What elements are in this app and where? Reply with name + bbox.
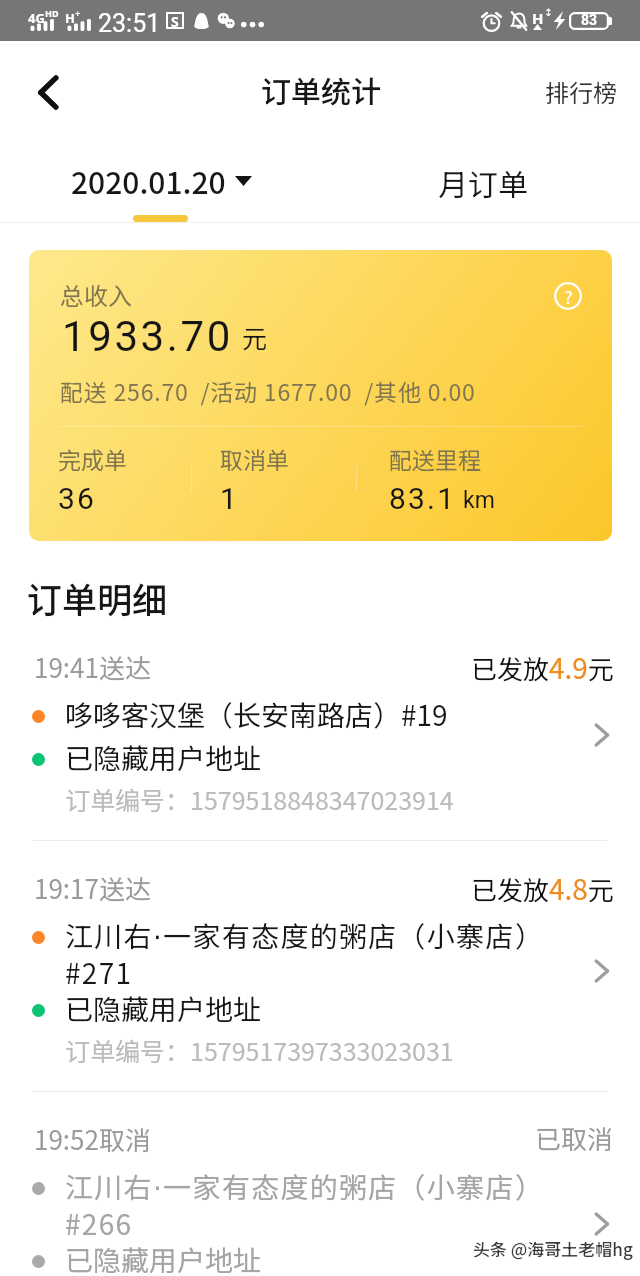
staticText: 取消单 [220, 442, 289, 475]
staticText: km [463, 487, 495, 514]
button[interactable]: 月订单 [320, 130, 640, 223]
staticText: 19:41送达 [34, 648, 151, 686]
staticText: S [171, 12, 179, 29]
staticText: 总收入 [60, 277, 132, 312]
button[interactable]: 2020.01.20 [0, 130, 320, 223]
staticText: 36 [58, 481, 97, 516]
staticText: 完成单 [58, 442, 127, 475]
staticText: 订单编号：1579518848347023914 [65, 781, 454, 817]
button[interactable]: 19:17送达 [0, 849, 640, 1091]
staticText: ↕ [544, 7, 548, 19]
staticText: 订单明细 [27, 572, 168, 623]
staticText: 83 [581, 12, 598, 28]
staticText: 配送 256.70 /活动 1677.00 /其他 0.00 [60, 374, 476, 407]
staticText: 元 [242, 319, 268, 355]
staticText: 4G [28, 9, 45, 27]
button[interactable]: 19:41送达 [0, 628, 640, 840]
staticText: 19:52取消 [34, 1120, 151, 1158]
staticText: 已隐藏用户地址 [65, 1239, 262, 1276]
staticText: H [65, 9, 75, 27]
staticText: 19:17送达 [34, 869, 151, 907]
staticText: 月订单 [438, 161, 528, 204]
staticText: 已发放4.8元 [471, 868, 614, 909]
staticText: 已发放4.9元 [471, 647, 614, 688]
staticText: ? [564, 283, 573, 309]
staticText: 83.1 [389, 481, 457, 516]
button[interactable]: 总收入 [29, 250, 612, 541]
staticText: 订单编号：1579517397333023031 [65, 1032, 454, 1068]
staticText: 23:51 [98, 9, 161, 38]
staticText: 配送里程 [389, 442, 481, 475]
staticText: 1 [220, 481, 240, 516]
staticText: 1933.70 [62, 312, 233, 361]
staticText: 江川右⋅一家有态度的粥店（小寨店） [65, 1166, 545, 1207]
button[interactable]: 排行榜 [531, 62, 631, 121]
staticText: 2020.01.20 [71, 159, 226, 202]
staticText: + [75, 7, 81, 19]
staticText: #271 [65, 952, 133, 993]
button[interactable]: Help [551, 279, 585, 313]
staticText: 江川右⋅一家有态度的粥店（小寨店） [65, 915, 545, 956]
staticText: 已取消 [535, 1119, 614, 1157]
staticText: #266 [65, 1203, 133, 1244]
staticText: 已隐藏用户地址 [65, 988, 262, 1029]
staticText: H [532, 8, 544, 28]
staticText: HD [45, 7, 59, 19]
button[interactable]: Back [24, 68, 72, 116]
staticText: 订单统计 [261, 68, 381, 111]
staticText: 头条 @海哥土老帽hg [473, 1236, 633, 1261]
staticText: 已隐藏用户地址 [65, 737, 262, 778]
staticText: 哆哆客汉堡（长安南路店）#19 [65, 694, 448, 735]
button[interactable]: 19:52取消 [0, 1100, 640, 1276]
staticText: 排行榜 [545, 74, 617, 109]
